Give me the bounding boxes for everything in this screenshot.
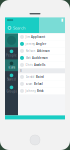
staticText: Jim — [25, 35, 29, 39]
button[interactable]: Jim — [18, 33, 65, 40]
button[interactable]: Johnny — [18, 87, 65, 94]
staticText: Search — [13, 25, 25, 30]
button[interactable]: Gerald — [18, 73, 65, 80]
button[interactable]: Nelson — [18, 47, 65, 54]
staticText: Jeremy — [25, 42, 34, 46]
staticText: Awdells — [34, 63, 45, 67]
button[interactable]: Chris — [18, 61, 65, 68]
button[interactable]: People — [5, 47, 18, 59]
staticText: Teams — [8, 66, 15, 69]
staticText: Atkinson — [37, 49, 50, 53]
button[interactable]: Susan — [18, 80, 65, 87]
staticText: Chris — [25, 63, 32, 67]
staticText: Susan — [25, 82, 32, 86]
staticText: Starred — [7, 78, 16, 81]
staticText: ▮ — [61, 18, 63, 22]
button[interactable]: Jeremy — [18, 40, 65, 47]
staticText: Audderson — [32, 56, 48, 60]
staticText: Gerald — [25, 75, 34, 79]
staticText: Angler — [36, 42, 46, 46]
staticText: ●●● — [7, 18, 13, 21]
staticText: B — [20, 69, 22, 73]
button[interactable]: Teams — [5, 59, 18, 71]
staticText: People — [6, 54, 17, 57]
button[interactable]: Search — [5, 22, 65, 33]
button[interactable]: Groups — [5, 83, 18, 95]
staticText: Belval — [34, 82, 43, 86]
staticText: Groups — [6, 90, 16, 93]
button[interactable]: Starred — [5, 71, 18, 83]
staticText: Nelson — [25, 49, 35, 53]
staticText: Brick — [37, 89, 44, 93]
staticText: Applicant — [31, 35, 45, 39]
staticText: Mark — [25, 56, 30, 60]
staticText: Johnny — [25, 89, 35, 93]
staticText: Baird — [36, 75, 44, 79]
button[interactable]: Mark — [18, 54, 65, 61]
